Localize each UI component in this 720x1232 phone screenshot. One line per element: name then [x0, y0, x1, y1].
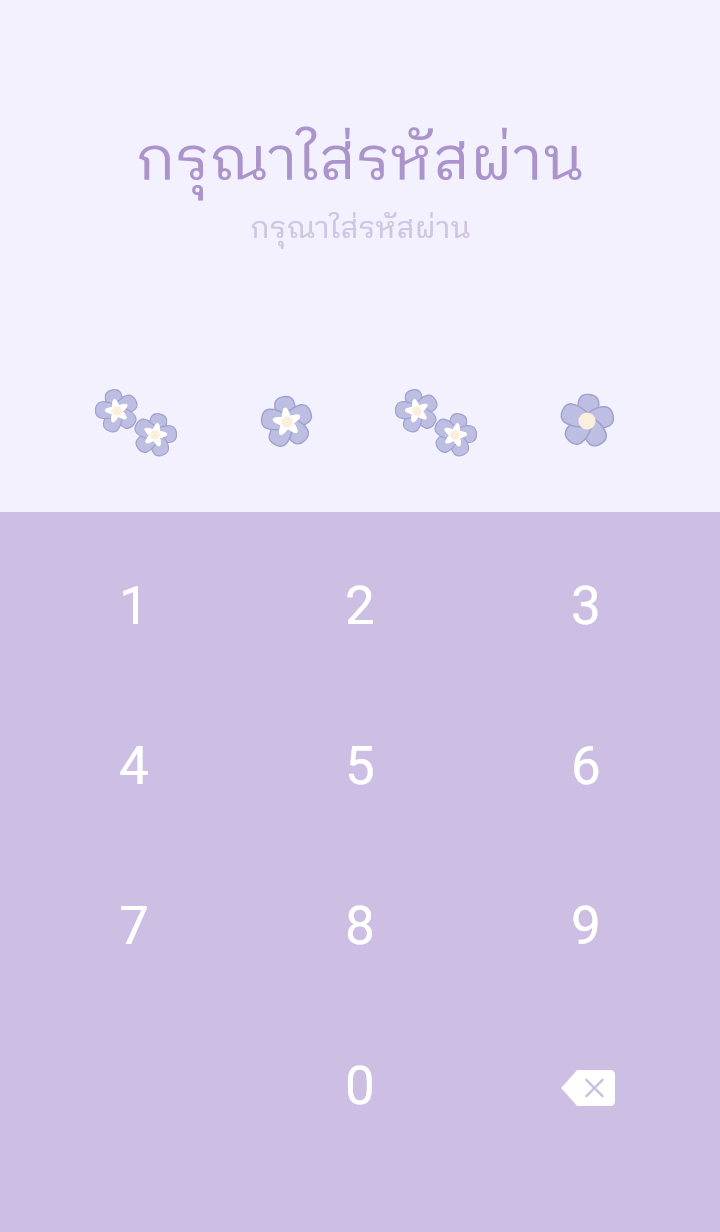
button[interactable]: 7	[21, 846, 247, 1006]
staticText: กรุณาใส่รหัสผ่าน	[135, 112, 585, 211]
staticText: กรุณาใส่รหัสผ่าน	[250, 205, 471, 254]
staticText: 1	[119, 575, 149, 637]
staticText: 7	[119, 895, 149, 957]
staticText: 0	[345, 1055, 375, 1117]
staticText: 8	[345, 895, 375, 957]
staticText: 5	[345, 735, 375, 797]
button[interactable]: 9	[473, 846, 699, 1006]
other: Backspace	[561, 1070, 615, 1106]
button[interactable]: 3	[473, 526, 699, 686]
button[interactable]: 5	[247, 686, 473, 846]
button[interactable]: 8	[247, 846, 473, 1006]
button[interactable]: 2	[247, 526, 473, 686]
button[interactable]: 1	[21, 526, 247, 686]
button[interactable]: Backspace	[473, 1006, 699, 1166]
button[interactable]: 6	[473, 686, 699, 846]
staticText: 3	[571, 575, 601, 637]
staticText: 4	[119, 735, 149, 797]
staticText: 9	[571, 895, 601, 957]
button[interactable]: 0	[247, 1006, 473, 1166]
staticText: 2	[345, 575, 375, 637]
button[interactable]: 4	[21, 686, 247, 846]
staticText: 6	[571, 735, 601, 797]
